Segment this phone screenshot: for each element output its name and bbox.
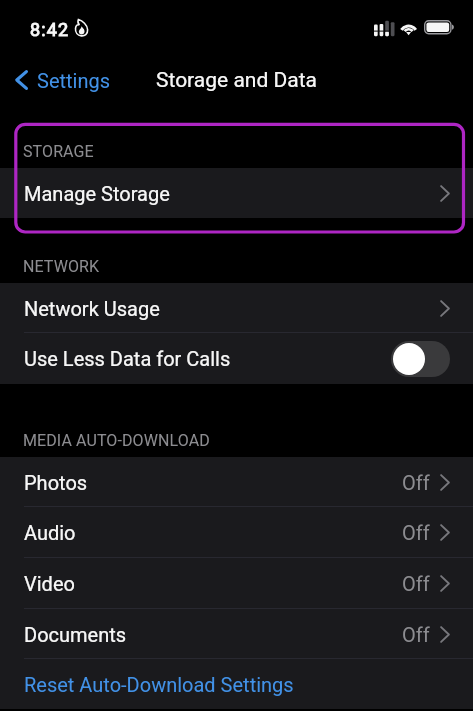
staticText: Off: [402, 521, 430, 544]
staticText: Documents: [24, 623, 127, 646]
button[interactable]: Video: [0, 558, 473, 609]
staticText: 8:42: [30, 19, 70, 40]
staticText: Off: [402, 572, 430, 595]
staticText: MEDIA AUTO-DOWNLOAD: [23, 431, 210, 450]
staticText: NETWORK: [23, 257, 100, 276]
staticText: Storage and Data: [156, 68, 317, 93]
other: Cellular signal: [374, 20, 394, 38]
staticText: Settings: [37, 69, 111, 92]
button[interactable]: Network Usage: [0, 283, 473, 333]
button[interactable]: Settings: [12, 62, 117, 98]
button[interactable]: Reset Auto-Download Settings: [0, 659, 473, 709]
staticText: Off: [402, 471, 430, 494]
button[interactable]: Photos: [0, 457, 473, 507]
button[interactable]: Audio: [0, 507, 473, 558]
staticText: Reset Auto-Download Settings: [24, 673, 294, 696]
staticText: Use Less Data for Calls: [24, 347, 231, 370]
staticText: Video: [24, 572, 75, 595]
staticText: STORAGE: [23, 142, 94, 161]
staticText: Audio: [24, 521, 76, 544]
staticText: Network Usage: [24, 297, 160, 320]
button[interactable]: Manage Storage: [0, 168, 473, 218]
button[interactable]: Use Less Data for Calls, off: [391, 341, 450, 377]
other: Battery: [424, 20, 456, 36]
button[interactable]: Documents: [0, 609, 473, 659]
staticText: Photos: [24, 471, 88, 494]
other: Wi-Fi: [398, 18, 420, 37]
staticText: Off: [402, 623, 430, 646]
button[interactable]: Use Less Data for Calls: [0, 333, 473, 384]
staticText: Manage Storage: [24, 182, 170, 205]
other: Focus mode: [75, 19, 88, 36]
